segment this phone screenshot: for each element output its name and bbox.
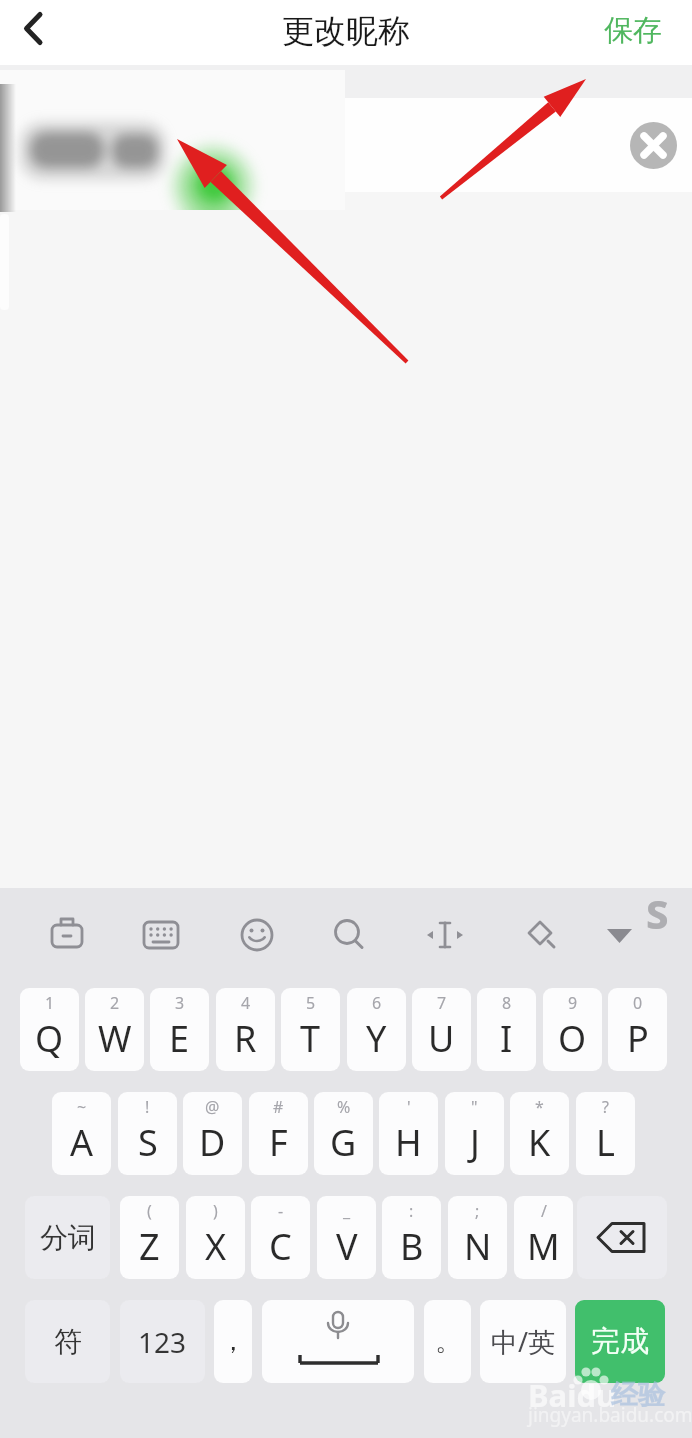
staticText: N	[464, 1222, 492, 1271]
staticText: 分词	[40, 1220, 96, 1255]
staticText: 123	[138, 1323, 187, 1361]
staticText: ?	[602, 1096, 609, 1118]
button[interactable]	[630, 122, 677, 169]
button[interactable]: 完成	[575, 1300, 665, 1383]
button[interactable]: 。	[424, 1300, 471, 1383]
button[interactable]: @	[183, 1092, 242, 1175]
button[interactable]: 5	[281, 988, 340, 1071]
button[interactable]: ，	[214, 1300, 252, 1383]
staticText: %	[337, 1096, 351, 1118]
staticText: G	[330, 1118, 357, 1167]
button[interactable]: ;	[448, 1196, 507, 1279]
button[interactable]: #	[249, 1092, 308, 1175]
button[interactable]: ~	[52, 1092, 111, 1175]
staticText: ;	[475, 1200, 480, 1222]
staticText: Z	[139, 1222, 160, 1271]
staticText: *	[535, 1096, 544, 1118]
staticText: ~	[77, 1096, 87, 1118]
staticText: A	[70, 1118, 94, 1167]
staticText: 2	[110, 992, 120, 1014]
staticText: 5	[306, 992, 316, 1014]
button[interactable]: '	[379, 1092, 438, 1175]
button[interactable]: )	[186, 1196, 245, 1279]
button[interactable]: 保存	[604, 12, 662, 49]
button[interactable]: ?	[576, 1092, 635, 1175]
button[interactable]: 6	[347, 988, 406, 1071]
staticText: Y	[366, 1014, 387, 1063]
staticText: R	[234, 1014, 257, 1063]
staticText: 9	[568, 992, 578, 1014]
staticText: U	[428, 1014, 455, 1063]
staticText: S	[646, 886, 669, 940]
staticText: 7	[437, 992, 447, 1014]
button[interactable]: /	[514, 1196, 573, 1279]
staticText: 8	[502, 992, 512, 1014]
staticText: 0	[633, 992, 643, 1014]
staticText: P	[627, 1014, 649, 1063]
staticText: -	[278, 1200, 284, 1222]
button[interactable]: 中/英	[480, 1300, 566, 1383]
staticText: _	[343, 1200, 351, 1222]
staticText: 更改昵称	[282, 11, 410, 51]
staticText: 中/英	[491, 1323, 556, 1360]
staticText: 6	[372, 992, 382, 1014]
button[interactable]: 7	[412, 988, 471, 1071]
staticText: H	[395, 1118, 422, 1167]
staticText: ，	[220, 1325, 246, 1358]
button[interactable]: (	[120, 1196, 179, 1279]
button[interactable]: 0	[608, 988, 667, 1071]
button[interactable]: "	[445, 1092, 504, 1175]
staticText: T	[300, 1014, 321, 1063]
button[interactable]	[577, 1196, 667, 1279]
staticText: M	[527, 1222, 560, 1271]
staticText: /	[541, 1200, 547, 1222]
staticText: C	[269, 1222, 292, 1271]
button[interactable]: 2	[85, 988, 144, 1071]
button[interactable]: 8	[477, 988, 536, 1071]
button[interactable]: %	[314, 1092, 373, 1175]
staticText: W	[98, 1014, 132, 1063]
button[interactable]: 4	[216, 988, 275, 1071]
button[interactable]	[262, 1300, 414, 1383]
button[interactable]: 3	[150, 988, 209, 1071]
staticText: "	[471, 1096, 478, 1118]
staticText: #	[273, 1096, 284, 1118]
staticText: )	[213, 1200, 218, 1222]
button[interactable]: *	[510, 1092, 569, 1175]
button[interactable]: :	[382, 1196, 441, 1279]
staticText: S	[138, 1118, 158, 1167]
button[interactable]: 1	[20, 988, 79, 1071]
button[interactable]	[10, 6, 62, 58]
staticText: 。	[435, 1325, 461, 1358]
staticText: I	[500, 1014, 513, 1063]
staticText: !	[145, 1096, 150, 1118]
button[interactable]: 123	[120, 1300, 205, 1383]
staticText: K	[528, 1118, 551, 1167]
button[interactable]: 分词	[25, 1196, 110, 1279]
staticText: E	[169, 1014, 190, 1063]
staticText: X	[205, 1222, 227, 1271]
button[interactable]: _	[317, 1196, 376, 1279]
button[interactable]: 9	[543, 988, 602, 1071]
staticText: Q	[35, 1014, 64, 1063]
staticText: 完成	[591, 1323, 649, 1360]
button[interactable]: !	[118, 1092, 177, 1175]
staticText: :	[409, 1200, 414, 1222]
staticText: 1	[45, 992, 55, 1014]
staticText: B	[400, 1222, 424, 1271]
button[interactable]: -	[251, 1196, 310, 1279]
staticText: 3	[175, 992, 185, 1014]
staticText: O	[558, 1014, 587, 1063]
staticText: Baidu	[528, 1374, 617, 1416]
staticText: 符	[54, 1324, 82, 1359]
staticText: 4	[241, 992, 251, 1014]
staticText: (	[147, 1200, 152, 1222]
staticText: J	[470, 1118, 480, 1167]
staticText: 经验	[611, 1378, 665, 1412]
staticText: L	[596, 1118, 615, 1167]
staticText: D	[199, 1118, 226, 1167]
staticText: V	[336, 1222, 358, 1271]
button[interactable]: 符	[25, 1300, 110, 1383]
staticText: '	[407, 1096, 411, 1118]
staticText: F	[269, 1118, 288, 1167]
